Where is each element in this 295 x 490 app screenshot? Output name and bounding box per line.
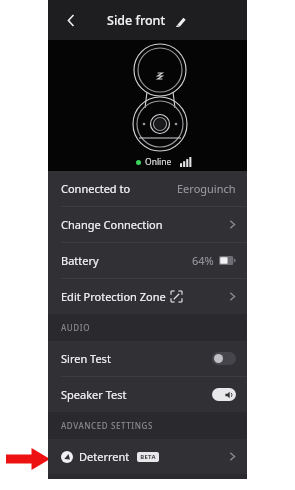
staticText: BETA (140, 453, 156, 461)
staticText: Siren Test (61, 351, 111, 366)
button[interactable]: Speaker Test (48, 377, 247, 412)
button[interactable]: Connected to (48, 171, 247, 206)
staticText: Change Connection (61, 217, 163, 232)
staticText: Side front (107, 12, 166, 29)
button[interactable]: Change Connection (48, 207, 247, 242)
staticText: Deterrent (79, 449, 130, 464)
button[interactable]: Edit Protection Zone (48, 279, 247, 314)
staticText: Online (145, 156, 172, 168)
button[interactable]: Deterrent (48, 439, 247, 474)
staticText: Edit Protection Zone (61, 289, 166, 304)
button[interactable]: Speaker on (212, 388, 236, 401)
staticText: Battery (61, 253, 99, 268)
button[interactable]: Back (58, 7, 84, 33)
staticText: ADVANCED SETTINGS (61, 420, 153, 431)
staticText: Eeroguinch (177, 181, 236, 196)
button[interactable]: Siren off (212, 352, 236, 365)
button[interactable]: Rename device (172, 13, 188, 29)
button[interactable]: Siren Test (48, 341, 247, 376)
staticText: Connected to (61, 181, 131, 196)
button[interactable]: Battery (48, 243, 247, 278)
staticText: Speaker Test (61, 387, 127, 402)
staticText: AUDIO (61, 322, 91, 333)
staticText: 64% (192, 253, 214, 268)
